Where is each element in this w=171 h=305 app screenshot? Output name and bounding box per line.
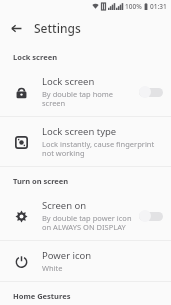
staticText: Settings [34, 20, 81, 36]
button[interactable]: Toggle [139, 85, 163, 99]
staticText: Lock screen [42, 75, 95, 88]
staticText: Turn on screen [13, 176, 69, 186]
staticText: Lock instantly, cause fingerprint not wo… [42, 139, 163, 158]
button[interactable]: Toggle [139, 209, 163, 223]
staticText: Power icon [42, 249, 92, 262]
staticText: Home Gestures [13, 291, 71, 301]
staticText: White [42, 263, 63, 273]
staticText: Lock screen type [42, 125, 117, 138]
button[interactable]: Lock screen type [0, 117, 171, 166]
button[interactable]: Back [6, 18, 26, 38]
button[interactable]: Lock screen [0, 67, 171, 116]
button[interactable]: Power icon [0, 241, 171, 281]
button[interactable]: Screen on [0, 191, 171, 240]
staticText: By double tap power icon on ALWAYS ON DI… [42, 213, 133, 232]
staticText: Lock screen [13, 52, 58, 62]
staticText: 100% [125, 2, 142, 11]
staticText: 01:31 [150, 2, 167, 11]
staticText: Screen on [42, 199, 87, 212]
staticText: By double tap home screen [42, 89, 133, 108]
